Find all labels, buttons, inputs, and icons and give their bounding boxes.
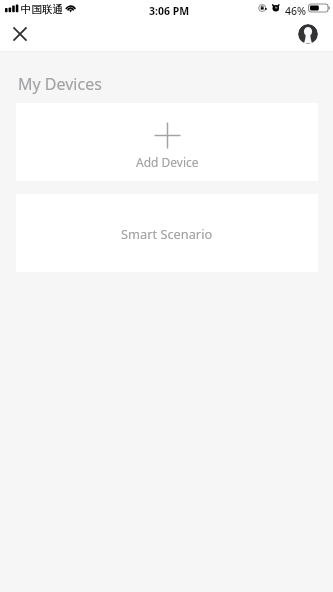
button[interactable]: Smart Scenario [16,194,318,272]
button[interactable]: Profile [298,24,318,44]
button[interactable]: Close [7,21,33,47]
staticText: My Devices [18,73,102,95]
staticText: 中国联通 [21,3,63,16]
staticText: 3:06 PM [149,4,190,18]
staticText: Add Device [136,154,199,170]
staticText: 中国联通 [21,3,63,16]
button[interactable]: Add Device [16,103,318,181]
staticText: 46% [285,4,306,18]
staticText: Smart Scenario [121,225,213,242]
